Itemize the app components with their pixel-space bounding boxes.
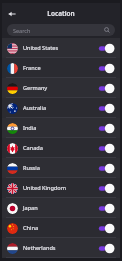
button[interactable]: Toggle Canada bbox=[97, 143, 115, 154]
button[interactable]: Germany bbox=[2, 78, 120, 98]
button[interactable]: United States bbox=[2, 38, 120, 58]
button[interactable]: Toggle Netherlands bbox=[97, 243, 115, 254]
button[interactable]: China bbox=[2, 218, 120, 238]
staticText: Japan bbox=[23, 204, 38, 212]
button[interactable]: Netherlands bbox=[2, 238, 120, 258]
button[interactable]: Toggle Japan bbox=[97, 203, 115, 214]
button[interactable]: United Kingdom bbox=[2, 178, 120, 198]
button[interactable]: Australia bbox=[2, 98, 120, 118]
button[interactable]: Back bbox=[5, 7, 19, 21]
button[interactable]: Toggle China bbox=[97, 223, 115, 234]
button[interactable]: Toggle Russia bbox=[97, 163, 115, 174]
button[interactable]: Search bbox=[7, 24, 115, 36]
staticText: Germany bbox=[23, 84, 48, 92]
staticText: United States bbox=[23, 44, 59, 52]
staticText: Search bbox=[13, 27, 31, 34]
staticText: United Kingdom bbox=[23, 184, 66, 192]
staticText: France bbox=[23, 64, 41, 72]
staticText: China bbox=[23, 224, 39, 232]
staticText: Russia bbox=[23, 164, 40, 172]
staticText: India bbox=[23, 124, 37, 132]
button[interactable]: Toggle United Kingdom bbox=[97, 183, 115, 194]
button[interactable]: France bbox=[2, 58, 120, 78]
button[interactable]: India bbox=[2, 118, 120, 138]
button[interactable]: Japan bbox=[2, 198, 120, 218]
button[interactable]: Toggle Germany bbox=[97, 83, 115, 94]
button[interactable]: Toggle Australia bbox=[97, 103, 115, 114]
staticText: Location bbox=[2, 9, 120, 18]
staticText: Canada bbox=[23, 144, 43, 152]
button[interactable]: Toggle United States bbox=[97, 43, 115, 54]
button[interactable]: Toggle France bbox=[97, 63, 115, 74]
button[interactable]: Canada bbox=[2, 138, 120, 158]
staticText: Netherlands bbox=[23, 244, 56, 252]
button[interactable]: Russia bbox=[2, 158, 120, 178]
button[interactable]: Toggle India bbox=[97, 123, 115, 134]
staticText: Australia bbox=[23, 104, 47, 112]
